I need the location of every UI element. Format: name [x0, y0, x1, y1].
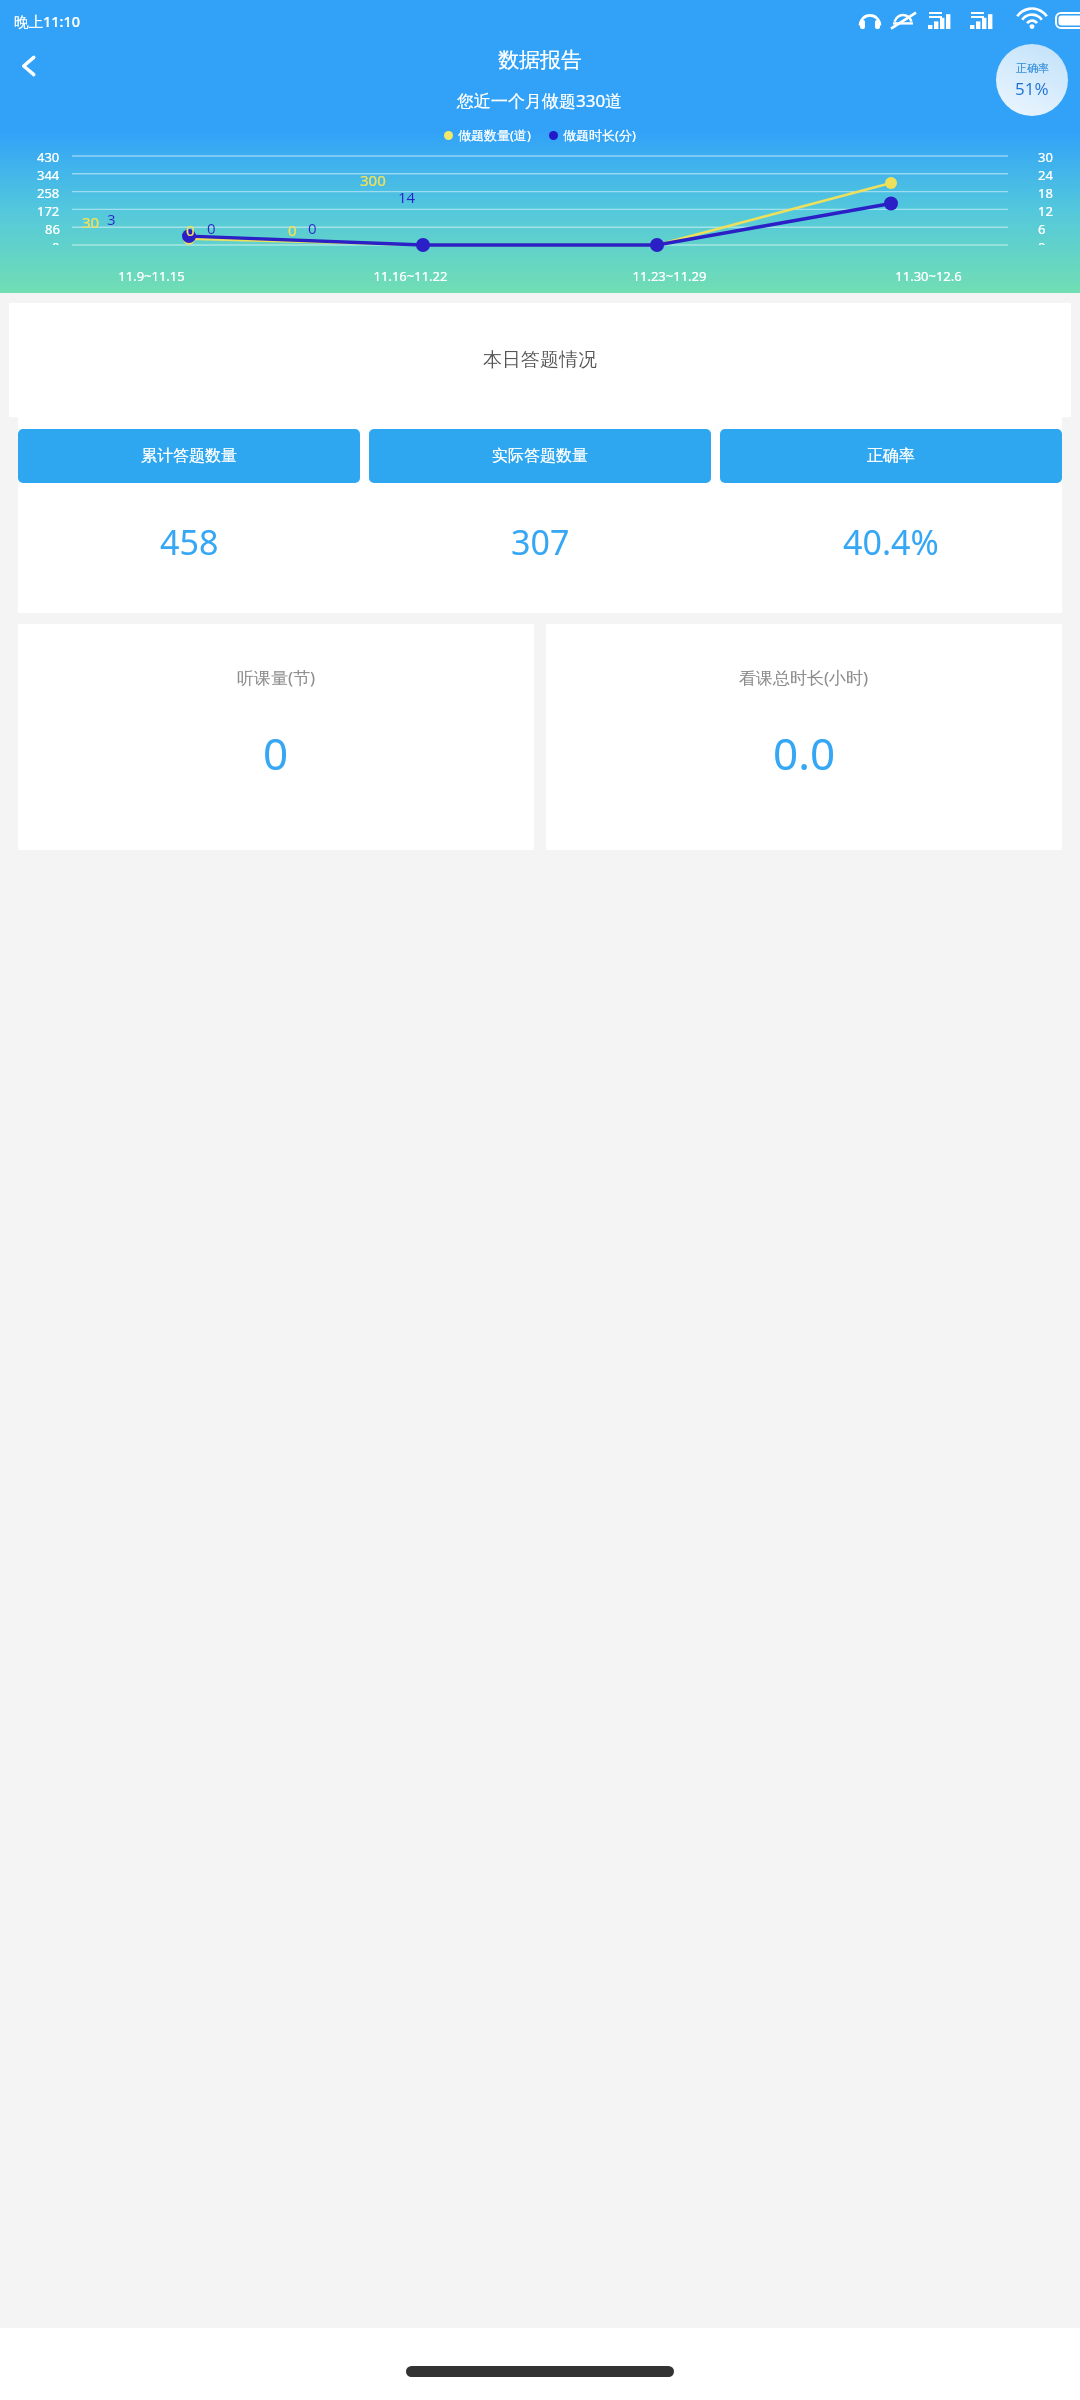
staticText: 14 — [398, 187, 416, 207]
staticText: 258 — [37, 184, 60, 202]
staticText: 0 — [207, 218, 216, 238]
staticText: 86 — [45, 220, 60, 238]
staticText: 本日答题情况 — [483, 348, 597, 372]
staticText: 3 — [107, 209, 116, 229]
staticText: 307 — [511, 519, 570, 565]
button[interactable]: Back — [5, 42, 53, 90]
staticText: 做题时长(分) — [563, 126, 636, 144]
staticText: 看课总时长(小时) — [739, 666, 869, 689]
staticText: 数据报告 — [498, 47, 582, 73]
staticText: 0 — [308, 218, 317, 238]
staticText: 172 — [37, 202, 60, 220]
staticText: 24 — [1038, 166, 1053, 184]
staticText: 18 — [1038, 184, 1053, 202]
button[interactable]: 正确率 — [996, 44, 1068, 116]
staticText: 11.23~11.29 — [540, 267, 799, 285]
staticText: 听课量(节) — [237, 666, 316, 689]
staticText: 51% — [1015, 77, 1049, 100]
staticText: 0 — [263, 723, 289, 783]
button[interactable]: 累计答题数量 — [18, 429, 360, 483]
button[interactable]: 实际答题数量 — [369, 429, 711, 483]
staticText: 11.9~11.15 — [22, 267, 281, 285]
staticText: 11.16~11.22 — [281, 267, 540, 285]
staticText: 300 — [360, 170, 386, 190]
staticText: 累计答题数量 — [141, 446, 237, 466]
staticText: 11.30~12.6 — [799, 267, 1058, 285]
staticText: 30 — [82, 212, 100, 232]
staticText: 344 — [37, 166, 60, 184]
staticText: 正确率 — [867, 446, 915, 466]
staticText: 0 — [52, 238, 60, 245]
staticText: 您近一个月做题330道 — [457, 89, 623, 112]
staticText: 实际答题数量 — [492, 446, 588, 466]
staticText: 0.0 — [773, 723, 836, 783]
staticText: 晚上11:10 — [14, 11, 81, 31]
staticText: 12 — [1038, 202, 1053, 220]
staticText: 6 — [1038, 220, 1046, 238]
staticText: 40.4% — [843, 519, 939, 565]
button[interactable]: 正确率 — [720, 429, 1062, 483]
staticText: 0 — [186, 220, 195, 240]
staticText: 0 — [288, 220, 297, 240]
staticText: 458 — [160, 519, 219, 565]
staticText: 做题数量(道) — [458, 126, 531, 144]
staticText: 430 — [37, 148, 60, 166]
staticText: 0 — [1038, 238, 1046, 245]
staticText: 30 — [1038, 148, 1053, 166]
staticText: 正确率 — [1016, 61, 1049, 75]
